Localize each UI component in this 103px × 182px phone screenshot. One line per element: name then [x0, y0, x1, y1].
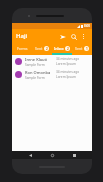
- button[interactable]: Sent: [72, 43, 92, 53]
- button[interactable]: Back: [26, 151, 34, 159]
- button[interactable]: Sent: [32, 43, 52, 53]
- staticText: Sent: [35, 46, 43, 51]
- staticText: Haji: [16, 32, 28, 40]
- staticText: Sample Form: [25, 63, 45, 67]
- staticText: Sample Form: [25, 76, 45, 80]
- button[interactable]: Send: [58, 32, 67, 41]
- staticText: Lorem Ipsum Housing Dem...: [56, 75, 89, 79]
- button[interactable]: Ron Omonba: [12, 68, 92, 81]
- staticText: 1: [86, 47, 88, 51]
- button[interactable]: Search: [69, 32, 78, 41]
- staticText: 34 minutes ago: [56, 57, 80, 61]
- button[interactable]: Home: [48, 151, 56, 159]
- staticText: 2: [46, 47, 48, 51]
- button[interactable]: Irene Klauti: [12, 55, 92, 68]
- button[interactable]: Recents: [70, 151, 78, 159]
- staticText: Sent: [75, 46, 83, 51]
- staticText: Ron Omonba: [25, 70, 51, 75]
- button[interactable]: Inbox: [52, 43, 72, 53]
- button[interactable]: Forms: [12, 43, 32, 53]
- staticText: Irene Klauti: [25, 57, 48, 62]
- staticText: 34 minutes ago: [56, 70, 80, 74]
- button[interactable]: More options: [79, 32, 88, 41]
- staticText: Forms: [17, 46, 28, 51]
- staticText: Inbox: [54, 46, 64, 51]
- staticText: Lorem Ipsum Housing Dem...: [56, 62, 89, 66]
- staticText: 2: [67, 47, 69, 51]
- staticText: 8:00: [84, 24, 90, 28]
